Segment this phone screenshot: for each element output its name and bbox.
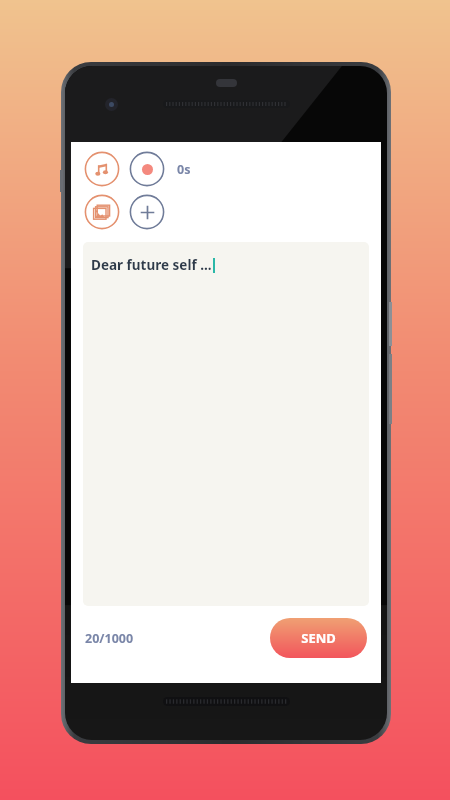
- button[interactable]: Add attachment: [129, 194, 165, 230]
- staticText: 20/1000: [85, 630, 134, 647]
- button[interactable]: Attach audio: [84, 151, 120, 187]
- button[interactable]: Dear future self ...: [83, 242, 369, 606]
- staticText: 0s: [177, 161, 191, 178]
- button[interactable]: Attach image: [84, 194, 120, 230]
- staticText: Dear future self ...: [91, 256, 212, 274]
- staticText: SEND: [301, 629, 336, 647]
- button[interactable]: Record voice: [129, 151, 165, 187]
- button[interactable]: SEND: [270, 618, 367, 658]
